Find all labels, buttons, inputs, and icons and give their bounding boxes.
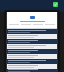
button[interactable] [6,39,58,44]
button[interactable] [6,64,58,69]
button[interactable] [6,34,58,39]
button[interactable] [6,69,58,72]
button[interactable] [6,12,58,28]
button[interactable] [6,49,58,54]
button[interactable] [6,44,58,49]
button[interactable] [6,59,58,64]
button[interactable]: App badge [53,2,58,7]
button[interactable] [6,29,58,34]
button[interactable] [6,54,58,59]
